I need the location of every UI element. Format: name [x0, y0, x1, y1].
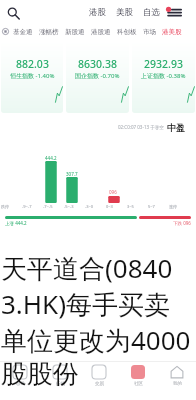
staticText: 0~3 — [106, 204, 113, 209]
staticText: 444.2 — [45, 155, 57, 161]
button[interactable]: 自选 — [0, 362, 40, 400]
staticText: -7~-5 — [43, 204, 53, 209]
staticText: -3~0 — [85, 204, 94, 209]
staticText: 行情 — [56, 381, 65, 387]
staticText: 天平道合(0840 — [1, 250, 196, 286]
button[interactable]: 港股通 — [88, 28, 114, 36]
staticText: 跌停 — [1, 204, 9, 209]
button[interactable]: 美股 — [111, 7, 138, 18]
staticText: 下跌 096 — [173, 220, 191, 226]
button[interactable]: Menu — [165, 4, 182, 21]
button[interactable]: 交易 — [79, 362, 118, 400]
staticText: 港股通 — [91, 28, 111, 36]
staticText: 涨停 — [169, 204, 177, 209]
button[interactable]: 行情 — [40, 362, 79, 400]
button[interactable]: 自选 — [138, 7, 165, 18]
staticText: 自选 — [143, 7, 160, 18]
staticText: 交易 — [95, 381, 104, 387]
staticText: 上证指数 -0.38% — [141, 72, 186, 80]
staticText: 恒生指数 -1.40% — [10, 72, 55, 80]
staticText: 882.03 — [16, 57, 49, 71]
button[interactable]: 港美股 — [159, 28, 185, 36]
staticText: 涨幅榜 — [39, 28, 59, 36]
staticText: 社区 — [134, 381, 143, 387]
staticText: -5~-3 — [64, 204, 74, 209]
staticText: 新股通 — [65, 28, 85, 36]
staticText: 3.HK)每手买卖 — [1, 286, 196, 322]
staticText: -9~-7 — [22, 204, 32, 209]
staticText: 02:C0:07 03-13 于涨空 — [118, 124, 164, 130]
staticText: 3~5 — [127, 204, 134, 209]
button[interactable]: Categories — [1, 27, 10, 36]
staticText: 2932.93 — [144, 57, 183, 71]
staticText: 科创板 — [117, 28, 137, 36]
staticText: 基金通 — [13, 28, 33, 36]
button[interactable]: 2932.93 — [132, 41, 195, 113]
staticText: 中盈 — [167, 122, 185, 133]
staticText: 上涨 444.2 — [5, 220, 27, 226]
staticText: 港股 — [89, 7, 106, 18]
button[interactable]: Search — [4, 4, 22, 22]
staticText: 096 — [109, 189, 117, 195]
staticText: 股股份 — [1, 358, 196, 391]
button[interactable]: 基金通 — [10, 28, 36, 36]
staticText: 自选 — [16, 381, 25, 387]
staticText: 307.7 — [66, 171, 78, 177]
button[interactable]: 港股 — [84, 7, 111, 18]
button[interactable]: 市场 — [140, 28, 159, 36]
staticText: 市场 — [143, 28, 156, 36]
staticText: 港美股 — [162, 28, 182, 36]
staticText: 国企指数 -0.70% — [75, 72, 120, 80]
staticText: 我的 — [173, 381, 182, 387]
button[interactable]: 新股通 — [62, 28, 88, 36]
staticText: 5~7 — [148, 204, 155, 209]
staticText: 8630.38 — [78, 57, 117, 71]
staticText: 单位更改为4000 — [1, 322, 196, 358]
button[interactable]: 社区 — [118, 362, 157, 400]
button[interactable]: 882.03 — [1, 41, 63, 113]
button[interactable]: 涨幅榜 — [36, 28, 62, 36]
button[interactable]: 8630.38 — [66, 41, 129, 113]
staticText: 美股 — [116, 7, 133, 18]
button[interactable]: 我的 — [157, 362, 196, 400]
button[interactable]: 科创板 — [114, 28, 140, 36]
